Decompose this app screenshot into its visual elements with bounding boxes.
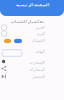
staticText: تفاصيل الحساب	[10, 19, 44, 24]
staticText: التشغيل	[31, 74, 44, 79]
staticText: الاسم	[35, 25, 44, 30]
staticText: الإشعارات	[28, 60, 44, 65]
staticText: الهاتف	[34, 49, 44, 54]
staticText: الاشتراك	[31, 38, 44, 43]
staticText: المشاركة	[29, 67, 44, 72]
staticText: الصفحة الرئيسية	[15, 2, 48, 7]
staticText: البريد	[36, 31, 44, 36]
